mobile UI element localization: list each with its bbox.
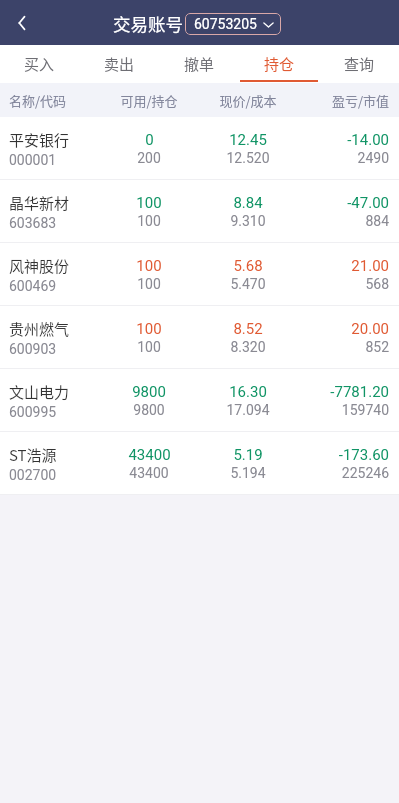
staticText: 852 xyxy=(365,339,389,355)
staticText: 5.19 xyxy=(233,446,263,464)
staticText: 9.310 xyxy=(230,213,266,229)
staticText: -14.00 xyxy=(347,131,389,149)
staticText: 159740 xyxy=(341,402,389,418)
staticText: -47.00 xyxy=(347,194,389,212)
staticText: 0 xyxy=(145,131,154,149)
staticText: 000001 xyxy=(9,152,57,168)
staticText: 60753205 xyxy=(194,16,257,32)
staticText: 16.30 xyxy=(229,383,267,401)
staticText: 002700 xyxy=(9,467,57,483)
staticText: 盈亏/市值 xyxy=(331,91,389,110)
staticText: 100 xyxy=(137,276,161,292)
staticText: 查询 xyxy=(344,53,375,75)
staticText: 9800 xyxy=(132,383,166,401)
staticText: 100 xyxy=(136,320,162,338)
staticText: 5.194 xyxy=(230,465,266,481)
staticText: 文山电力 xyxy=(9,381,70,403)
staticText: 晶华新材 xyxy=(9,192,70,214)
staticText: 100 xyxy=(136,257,162,275)
staticText: 8.320 xyxy=(230,339,266,355)
staticText: 600903 xyxy=(9,341,57,357)
staticText: 21.00 xyxy=(351,257,389,275)
button[interactable]: 晶华新材 xyxy=(0,180,399,243)
button[interactable]: 买入 xyxy=(0,45,79,83)
button[interactable]: 平安银行 xyxy=(0,117,399,180)
staticText: 9800 xyxy=(133,402,165,418)
button[interactable]: 贵州燃气 xyxy=(0,306,399,369)
staticText: 贵州燃气 xyxy=(9,318,70,340)
button[interactable]: 查询 xyxy=(319,45,399,83)
staticText: 交易账号 xyxy=(113,11,183,36)
staticText: -173.60 xyxy=(338,446,389,464)
staticText: 884 xyxy=(365,213,389,229)
staticText: 可用/持仓 xyxy=(120,91,178,110)
staticText: 持仓 xyxy=(264,53,295,75)
staticText: 5.68 xyxy=(233,257,263,275)
staticText: 2490 xyxy=(357,150,389,166)
staticText: 撤单 xyxy=(184,53,215,75)
button[interactable]: 文山电力 xyxy=(0,369,399,432)
button[interactable]: 风神股份 xyxy=(0,243,399,306)
button[interactable]: 卖出 xyxy=(79,45,159,83)
staticText: 200 xyxy=(137,150,161,166)
staticText: 43400 xyxy=(128,446,171,464)
staticText: 20.00 xyxy=(351,320,389,338)
button[interactable]: ST浩源 xyxy=(0,432,399,495)
staticText: 600995 xyxy=(9,404,57,420)
button[interactable]: 撤单 xyxy=(159,45,239,83)
staticText: 100 xyxy=(137,213,161,229)
staticText: ST浩源 xyxy=(9,444,57,466)
staticText: 225246 xyxy=(341,465,389,481)
button[interactable]: 60753205 xyxy=(185,13,281,35)
staticText: 5.470 xyxy=(230,276,266,292)
staticText: 100 xyxy=(137,339,161,355)
staticText: 名称/代码 xyxy=(9,91,67,110)
staticText: 17.094 xyxy=(226,402,270,418)
staticText: 43400 xyxy=(129,465,169,481)
staticText: 12.45 xyxy=(229,131,267,149)
staticText: 平安银行 xyxy=(9,129,70,151)
staticText: 现价/成本 xyxy=(219,91,277,110)
staticText: 568 xyxy=(365,276,389,292)
staticText: 卖出 xyxy=(104,53,135,75)
button[interactable]: Back xyxy=(0,1,44,45)
button[interactable]: 持仓 xyxy=(239,45,319,83)
staticText: -7781.20 xyxy=(330,383,389,401)
staticText: 8.84 xyxy=(233,194,263,212)
staticText: 603683 xyxy=(9,215,57,231)
staticText: 100 xyxy=(136,194,162,212)
staticText: 600469 xyxy=(9,278,57,294)
staticText: 买入 xyxy=(24,53,55,75)
staticText: 风神股份 xyxy=(9,255,70,277)
staticText: 12.520 xyxy=(226,150,270,166)
staticText: 8.52 xyxy=(233,320,263,338)
